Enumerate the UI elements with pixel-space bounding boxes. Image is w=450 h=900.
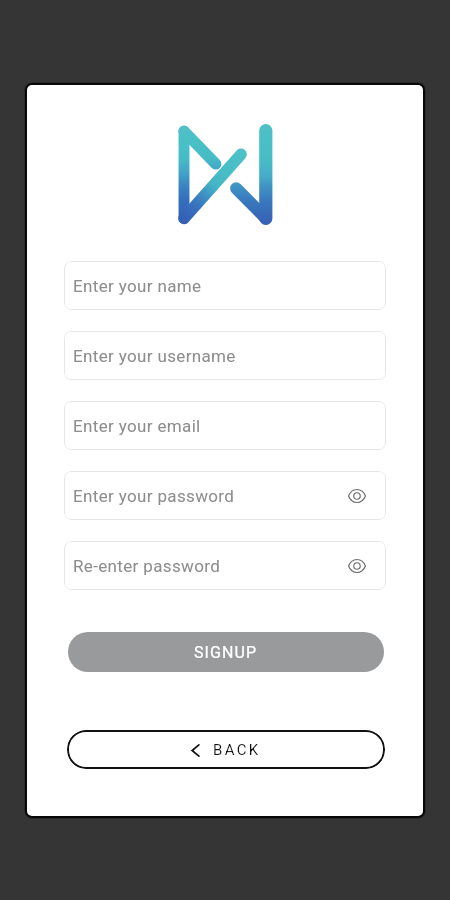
staticText: Re-enter password <box>73 556 221 576</box>
button[interactable]: SIGNUP <box>68 632 384 672</box>
button[interactable]: Show password <box>347 486 367 506</box>
staticText: Enter your email <box>73 416 201 436</box>
button[interactable]: Enter your email <box>64 401 386 450</box>
staticText: BACK <box>213 741 261 759</box>
staticText: SIGNUP <box>194 643 258 662</box>
button[interactable]: Re-enter password <box>64 541 386 590</box>
staticText: Enter your name <box>73 276 202 296</box>
button[interactable]: Show password <box>347 556 367 576</box>
button[interactable]: BACK <box>67 730 385 769</box>
staticText: Enter your password <box>73 486 235 506</box>
button[interactable]: Enter your username <box>64 331 386 380</box>
button[interactable]: Enter your password <box>64 471 386 520</box>
staticText: Enter your username <box>73 346 236 366</box>
button[interactable]: Enter your name <box>64 261 386 310</box>
